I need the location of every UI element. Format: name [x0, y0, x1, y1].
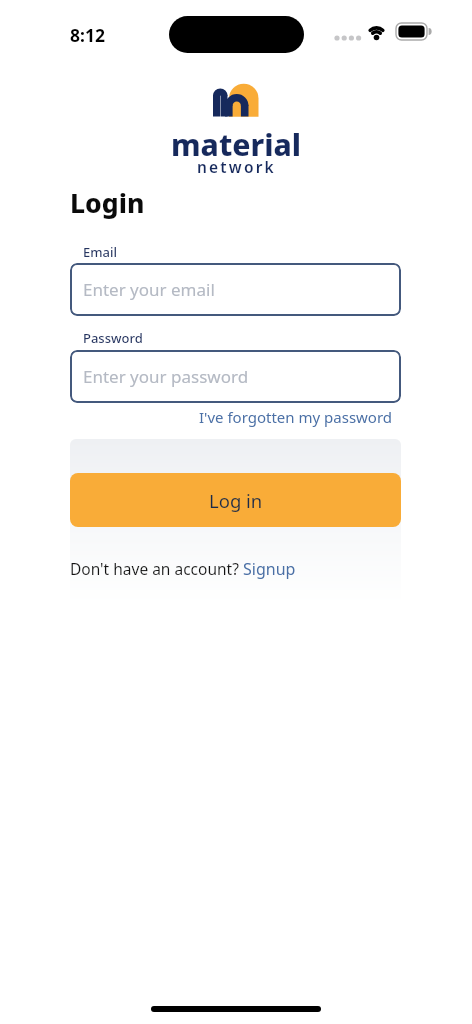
staticText: Enter your password	[83, 365, 249, 388]
staticText: Login	[70, 185, 145, 221]
button[interactable]: Signup	[243, 558, 296, 580]
staticText: Log in	[209, 488, 263, 513]
button[interactable]: I've forgotten my password	[199, 407, 393, 427]
button[interactable]: Enter your email	[70, 263, 401, 316]
staticText: Password	[83, 329, 143, 347]
button[interactable]: Enter your password	[70, 350, 401, 403]
staticText: 8:12	[70, 23, 105, 47]
staticText: Email	[83, 243, 118, 261]
staticText: Enter your email	[83, 278, 215, 301]
button[interactable]: Log in	[70, 473, 401, 527]
staticText: network	[197, 156, 276, 177]
staticText: Don't have an account?	[70, 558, 243, 579]
staticText: material	[171, 124, 302, 165]
